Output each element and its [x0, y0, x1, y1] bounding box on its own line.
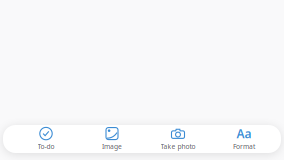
- staticText: To-do: [37, 142, 54, 151]
- staticText: Aa: [236, 126, 251, 141]
- staticText: Take photo: [160, 142, 195, 151]
- button[interactable]: Take photo: [145, 125, 211, 153]
- button[interactable]: Aa: [211, 125, 277, 153]
- button[interactable]: To-do: [13, 125, 79, 153]
- staticText: Image: [102, 142, 122, 151]
- staticText: Format: [233, 142, 255, 151]
- button[interactable]: Image: [79, 125, 145, 153]
